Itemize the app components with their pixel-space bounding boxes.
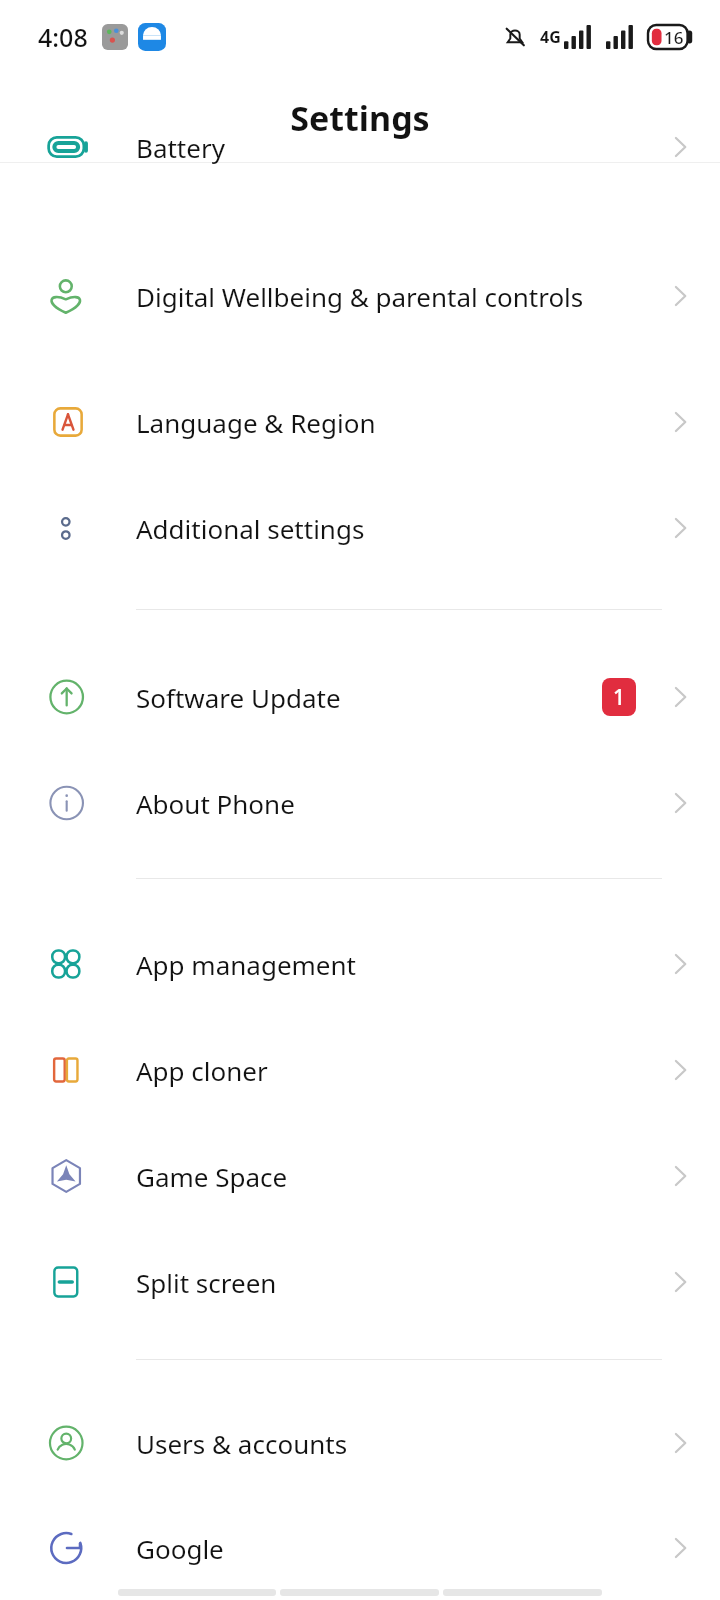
staticText: Battery [136, 130, 646, 165]
staticText: 4G [540, 26, 561, 48]
staticText: Split screen [136, 1265, 634, 1300]
staticText: App management [136, 947, 634, 982]
staticText: Settings [290, 95, 430, 141]
staticText: Users & accounts [136, 1426, 634, 1461]
staticText: Digital Wellbeing & parental controls [136, 279, 634, 314]
staticText: Google [136, 1531, 634, 1566]
staticText: 1 [613, 683, 626, 712]
button[interactable]: App cloner [0, 1017, 720, 1123]
button[interactable]: Language & Region [0, 369, 720, 475]
button[interactable]: About Phone [0, 750, 720, 856]
button[interactable]: App management [0, 911, 720, 1017]
staticText: Language & Region [136, 405, 634, 440]
staticText: App cloner [136, 1053, 634, 1088]
staticText: Additional settings [136, 511, 634, 546]
button[interactable]: Digital Wellbeing & parental controls [0, 223, 720, 369]
button[interactable]: Game Space [0, 1123, 720, 1229]
button[interactable]: Software Update [0, 644, 720, 750]
button[interactable]: Additional settings [0, 475, 720, 581]
button[interactable]: Split screen [0, 1229, 720, 1335]
staticText: About Phone [136, 786, 634, 821]
staticText: 16 [664, 26, 684, 49]
staticText: 4:08 [38, 20, 88, 54]
button[interactable]: Google [0, 1496, 720, 1600]
staticText: Software Update [136, 680, 590, 715]
button[interactable]: Users & accounts [0, 1390, 720, 1496]
staticText: Game Space [136, 1159, 634, 1194]
